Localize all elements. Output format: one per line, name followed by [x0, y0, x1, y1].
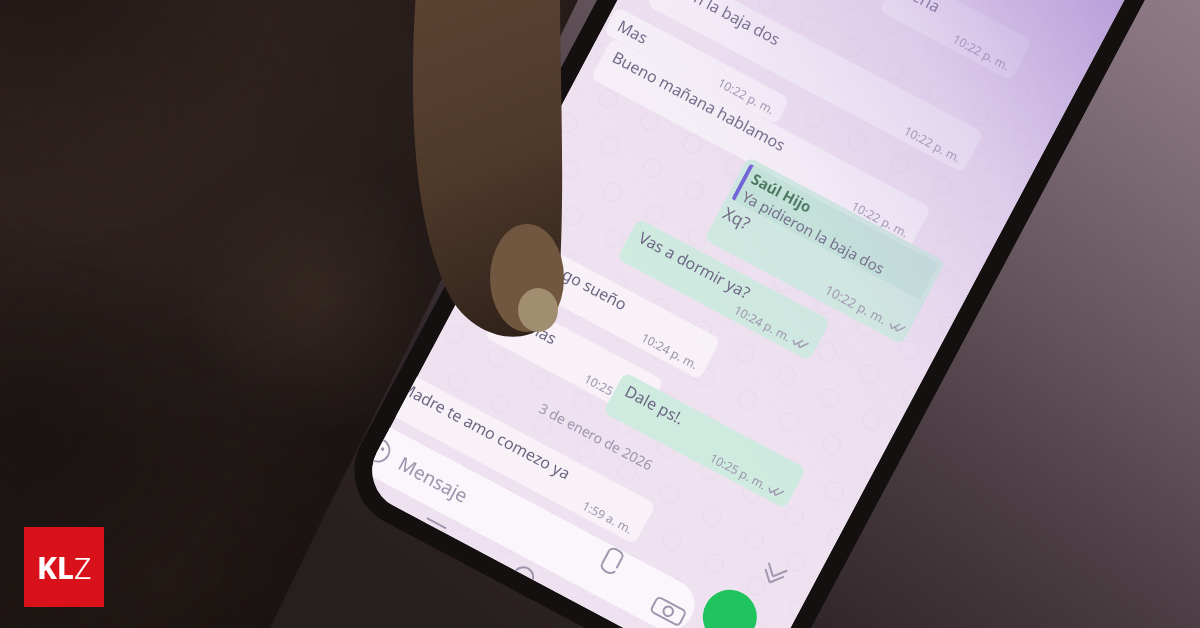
button[interactable]: Scroll to bottom — [755, 556, 793, 594]
other: Emoji — [372, 439, 395, 468]
staticText: Bueno mañana hablamos — [609, 46, 789, 156]
button[interactable]: Bueno mañana hablamos — [590, 38, 931, 248]
button[interactable]: ieron la baja dos — [646, 0, 984, 173]
staticText: ...ería — [897, 0, 944, 18]
staticText: Saúl Hijo — [748, 168, 816, 217]
button[interactable]: Saúl Hijo — [704, 157, 946, 345]
button[interactable]: KL — [24, 527, 104, 607]
staticText: Madre te amo comezo ya — [405, 380, 575, 485]
staticText: Vas a dormir ya? — [635, 226, 755, 304]
staticText: 1:59 a. m. — [580, 497, 636, 537]
staticText: 10:25 p. m. — [582, 370, 644, 413]
staticText: 10:22 p. m. — [950, 30, 1013, 73]
button[interactable]: mi tengo sueño — [498, 232, 721, 380]
staticText: 10:24 p. m. — [732, 301, 794, 344]
button[interactable]: Vas a dormir ya? — [617, 218, 831, 361]
button[interactable]: blemas — [484, 296, 664, 421]
button[interactable]: Camera — [645, 588, 691, 628]
button[interactable]: Voice message — [693, 580, 766, 628]
staticText: Mensaje — [394, 450, 473, 509]
staticText: 10:22 p. m. — [715, 74, 778, 117]
staticText: Dale ps!. — [621, 380, 689, 430]
button[interactable]: Mas — [603, 6, 790, 125]
staticText: 3 de enero de 2026 — [536, 398, 657, 475]
staticText: blemas — [502, 304, 561, 349]
staticText: 10:25 p. m. — [707, 449, 770, 492]
button[interactable]: Madre te amo comezo ya — [395, 377, 656, 545]
button[interactable]: Dale ps!. — [603, 372, 806, 509]
staticText: Ya pidieron la baja dos — [739, 186, 889, 278]
staticText: ieron la baja dos — [664, 0, 784, 50]
staticText: 10:24 p. m. — [639, 329, 701, 372]
staticText: Z — [74, 547, 92, 588]
staticText: mi tengo sueño — [516, 240, 631, 315]
staticText: 10:22 p. m. — [849, 197, 911, 240]
button[interactable]: Recents — [422, 510, 452, 534]
staticText: Xq? — [719, 201, 755, 235]
button[interactable]: ...ería — [879, 0, 1033, 81]
staticText: KL — [37, 547, 74, 588]
staticText: 10:22 p. m. — [822, 281, 890, 328]
staticText: Mas — [614, 15, 652, 49]
staticText: 10:22 p. m. — [902, 122, 964, 165]
button[interactable]: Emoji — [366, 427, 704, 628]
button[interactable]: Home — [514, 561, 539, 581]
button[interactable]: Attach — [590, 540, 633, 584]
